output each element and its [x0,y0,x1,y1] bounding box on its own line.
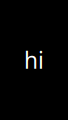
staticText: hi [24,45,44,75]
